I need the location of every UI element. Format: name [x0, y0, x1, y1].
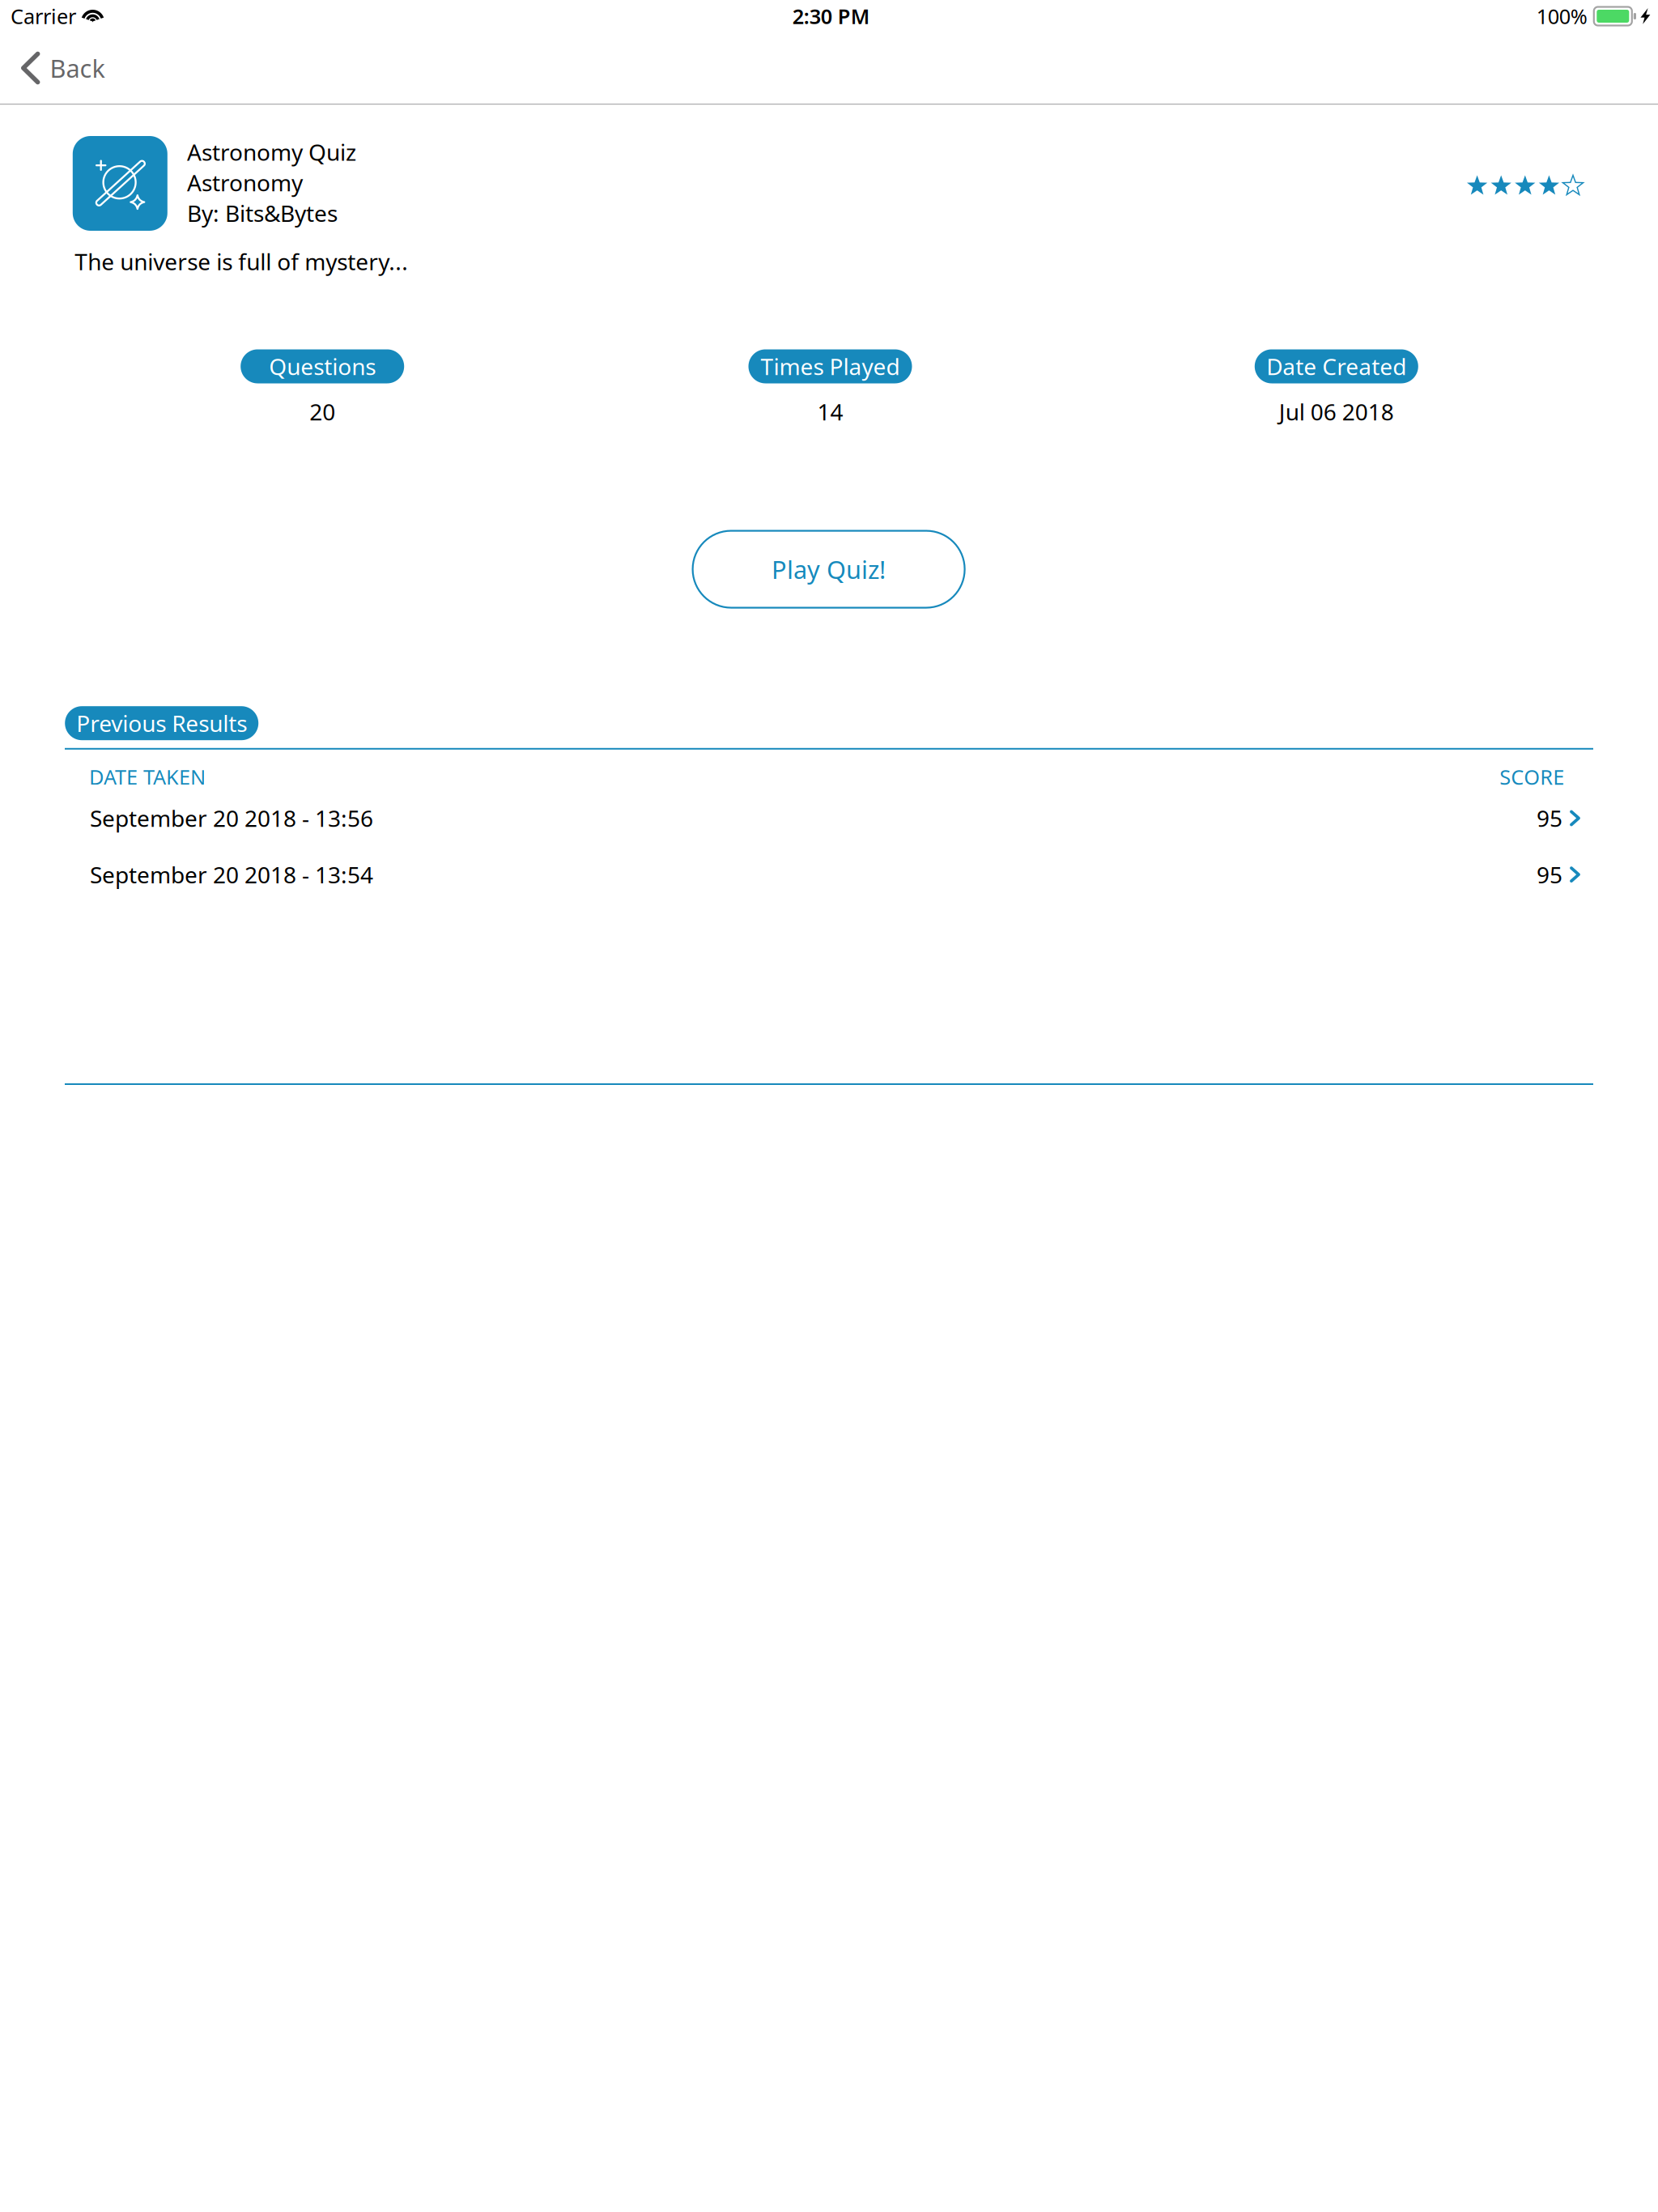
button[interactable]: Back: [21, 43, 166, 93]
staticText: 100%: [1536, 3, 1587, 30]
staticText: Carrier: [11, 3, 76, 30]
staticText: Astronomy Quiz: [187, 137, 356, 167]
staticText: Play Quiz!: [772, 553, 886, 586]
staticText: SCORE: [1499, 763, 1564, 790]
staticText: By: Bits&Bytes: [187, 198, 338, 228]
staticText: Date Created: [1266, 351, 1406, 381]
staticText: Astronomy: [187, 167, 303, 198]
button[interactable]: Play Quiz!: [693, 531, 965, 608]
staticText: DATE TAKEN: [89, 763, 206, 790]
staticText: 95: [1537, 803, 1562, 833]
staticText: The universe is full of mystery...: [75, 246, 408, 277]
staticText: September 20 2018 - 13:56: [90, 803, 373, 833]
staticText: 20: [309, 397, 335, 427]
staticText: Questions: [269, 351, 376, 381]
staticText: 2:30 PM: [792, 3, 870, 30]
staticText: Previous Results: [76, 708, 247, 738]
staticText: September 20 2018 - 13:54: [90, 859, 373, 890]
staticText: Times Played: [761, 351, 900, 381]
button[interactable]: September 20 2018 - 13:56: [65, 791, 1593, 845]
button[interactable]: September 20 2018 - 13:54: [65, 848, 1593, 901]
staticText: 95: [1537, 859, 1562, 890]
staticText: Back: [50, 51, 105, 84]
staticText: 14: [817, 397, 843, 427]
staticText: Jul 06 2018: [1279, 397, 1394, 427]
